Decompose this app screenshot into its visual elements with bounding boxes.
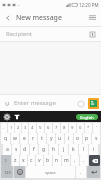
button[interactable]: . — [1, 123, 7, 133]
button[interactable]: . — [76, 166, 86, 178]
button[interactable]: 2 — [15, 123, 21, 133]
button[interactable]: h — [49, 144, 58, 155]
button[interactable]: l — [79, 144, 88, 155]
button[interactable]: 8 — [61, 123, 68, 133]
staticText: 2 — [17, 125, 20, 131]
button[interactable]: z — [12, 155, 19, 166]
button[interactable]: f — [30, 144, 38, 155]
staticText: d — [23, 146, 27, 153]
button[interactable]: y — [47, 133, 55, 144]
button[interactable]: u — [56, 133, 64, 144]
staticText: q — [4, 135, 8, 142]
staticText: , — [74, 157, 76, 164]
button[interactable]: v — [36, 155, 43, 166]
button[interactable]: s — [92, 133, 100, 144]
button[interactable]: More options — [84, 9, 101, 26]
staticText: s — [95, 135, 98, 142]
staticText: p — [85, 135, 89, 142]
button[interactable]: Emoji — [74, 97, 87, 110]
button[interactable]: Shift — [1, 155, 11, 166]
button[interactable]: q — [1, 133, 10, 144]
button[interactable]: w — [11, 133, 19, 144]
staticText: 5 — [39, 125, 42, 131]
button[interactable]: b — [44, 155, 52, 166]
button[interactable]: x — [20, 155, 27, 166]
button[interactable]: Symbols — [1, 166, 13, 178]
staticText: f — [33, 146, 35, 153]
button[interactable]: Clipboard — [12, 112, 21, 121]
button[interactable]: d — [21, 144, 29, 155]
staticText: u — [58, 135, 62, 142]
staticText: c — [30, 157, 33, 164]
staticText: y — [50, 135, 53, 142]
button[interactable]: o — [74, 133, 82, 144]
button[interactable]: 9 — [69, 123, 76, 133]
button[interactable]: a — [3, 144, 11, 155]
button[interactable]: r — [29, 133, 37, 144]
staticText: z — [14, 157, 17, 164]
button[interactable]: English — [76, 114, 98, 120]
button[interactable]: Attach — [0, 96, 14, 110]
button[interactable]: Back — [0, 10, 16, 26]
button[interactable]: k — [69, 144, 78, 155]
button[interactable]: i — [65, 133, 73, 144]
staticText: 7 — [55, 125, 58, 131]
button[interactable]: ' — [93, 123, 100, 133]
button[interactable]: Backspace — [89, 155, 100, 166]
staticText: 4 — [31, 125, 34, 131]
staticText: 8 — [63, 125, 66, 131]
button[interactable]: i — [89, 144, 98, 155]
staticText: . — [3, 125, 5, 131]
button[interactable]: 1 — [8, 123, 14, 133]
staticText: i — [68, 135, 70, 142]
button[interactable]: 7 — [53, 123, 60, 133]
staticText: s — [15, 146, 18, 153]
staticText: t — [41, 135, 43, 142]
staticText: Enter message — [14, 99, 56, 107]
staticText: ⇧ — [4, 158, 8, 163]
staticText: 1 — [10, 125, 13, 131]
staticText: New message — [16, 13, 62, 23]
staticText: English — [80, 115, 94, 120]
button[interactable]: e — [20, 133, 28, 144]
button[interactable]: t — [38, 133, 46, 144]
staticText: space — [45, 170, 56, 175]
button[interactable]: Send — [88, 98, 99, 109]
staticText: g — [42, 146, 46, 153]
staticText: i — [93, 146, 95, 153]
staticText: j — [63, 146, 65, 153]
button[interactable]: * — [85, 123, 92, 133]
button[interactable]: c — [28, 155, 35, 166]
button[interactable]: 0 — [77, 123, 84, 133]
button[interactable]: . — [80, 155, 88, 166]
staticText: Recipient — [6, 30, 33, 38]
staticText: 12:20 PM — [79, 2, 99, 8]
staticText: x — [22, 157, 25, 164]
button[interactable]: Enter — [87, 166, 100, 178]
button[interactable]: Add recipient from contacts — [85, 27, 99, 41]
staticText: b — [46, 157, 50, 164]
button[interactable]: j — [59, 144, 68, 155]
button[interactable]: , — [71, 155, 79, 166]
button[interactable]: s — [12, 144, 20, 155]
staticText: 3 — [24, 125, 27, 131]
staticText: 123 — [4, 170, 11, 175]
button[interactable]: Emoji — [14, 166, 25, 178]
button[interactable]: 4 — [29, 123, 36, 133]
button[interactable]: m — [62, 155, 70, 166]
staticText: e — [23, 135, 26, 142]
staticText: . — [80, 169, 82, 176]
button[interactable]: space — [26, 166, 75, 178]
button[interactable]: p — [83, 133, 91, 144]
button[interactable]: Recipient — [0, 27, 101, 41]
button[interactable]: n — [53, 155, 61, 166]
button[interactable]: 3 — [22, 123, 28, 133]
button[interactable]: g — [39, 144, 48, 155]
staticText: 9 — [71, 125, 74, 131]
button[interactable]: 5 — [37, 123, 44, 133]
button[interactable]: Keyboard settings — [2, 112, 11, 121]
button[interactable]: 6 — [45, 123, 52, 133]
staticText: l — [83, 146, 85, 153]
staticText: . — [83, 157, 85, 164]
staticText: r — [32, 135, 35, 142]
